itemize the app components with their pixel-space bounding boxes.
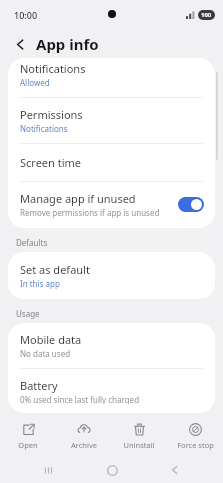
button[interactable]: Uninstall [112, 419, 166, 452]
staticText: Manage app if unused [20, 191, 136, 206]
staticText: Uninstall [123, 440, 155, 450]
button[interactable]: Mobile data [8, 323, 215, 368]
staticText: 10:00 [14, 9, 38, 21]
button[interactable]: Back [11, 35, 29, 53]
button[interactable]: Recents [33, 457, 63, 483]
button[interactable]: Manage app if unused [8, 182, 215, 228]
button[interactable]: Manage app if unused, on [178, 197, 204, 212]
staticText: Notifications [20, 61, 86, 76]
staticText: No data used [20, 348, 71, 359]
staticText: Remove permissions if app is unused [20, 207, 160, 218]
staticText: Battery [20, 378, 58, 393]
staticText: Archive [71, 440, 97, 450]
button[interactable]: Archive [57, 419, 111, 452]
button[interactable]: Back [160, 457, 190, 483]
staticText: Usage [16, 308, 40, 319]
staticText: In this app [20, 278, 60, 289]
staticText: App info [36, 34, 99, 54]
staticText: Set as default [20, 262, 90, 277]
button[interactable]: Screen time [8, 144, 215, 181]
button[interactable]: Notifications [8, 58, 215, 97]
button[interactable]: Force stop [168, 419, 222, 452]
button[interactable]: Set as default [8, 252, 215, 299]
button[interactable]: Open [1, 419, 55, 452]
button[interactable]: Battery [8, 369, 215, 413]
staticText: Defaults [16, 237, 48, 248]
staticText: 100 [201, 11, 212, 19]
button[interactable]: Permissions [8, 98, 215, 143]
button[interactable]: Home [97, 457, 127, 483]
staticText: 0% used since last fully charged [20, 394, 140, 404]
staticText: Mobile data [20, 332, 82, 347]
staticText: Screen time [20, 155, 82, 170]
staticText: Allowed [20, 77, 50, 88]
staticText: Permissions [20, 107, 83, 122]
staticText: Force stop [177, 440, 214, 450]
staticText: Open [18, 440, 38, 450]
staticText: Notifications [20, 123, 68, 134]
